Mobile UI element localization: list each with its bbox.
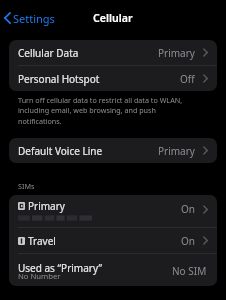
button[interactable]: Cellular Data: [9, 40, 217, 65]
staticText: Primary: [158, 46, 195, 60]
button[interactable]: Back to Settings: [0, 7, 61, 30]
staticText: Travel: [28, 234, 56, 248]
staticText: Turn off cellular data to restrict all d…: [18, 95, 198, 127]
other: Back to Settings: [4, 13, 11, 23]
staticText: Primary: [28, 199, 65, 213]
staticText: On: [181, 234, 195, 248]
staticText: Settings: [13, 11, 55, 26]
staticText: Used as “Primary”: [18, 261, 103, 275]
button[interactable]: Personal Hotspot: [9, 66, 217, 91]
staticText: Off: [180, 72, 195, 86]
staticText: Personal Hotspot: [18, 72, 100, 86]
staticText: Primary: [158, 144, 195, 158]
button[interactable]: Default Voice Line: [9, 138, 217, 163]
staticText: Cellular: [93, 11, 133, 25]
button[interactable]: Used as “Primary”: [9, 254, 217, 286]
staticText: Default Voice Line: [18, 144, 103, 158]
staticText: No Number: [18, 271, 61, 281]
staticText: No SIM: [172, 264, 207, 278]
button[interactable]: Primary: [9, 195, 217, 227]
staticText: Cellular Data: [18, 46, 79, 60]
button[interactable]: Travel: [9, 228, 217, 253]
staticText: SIMs: [18, 181, 35, 191]
staticText: On: [181, 202, 195, 216]
